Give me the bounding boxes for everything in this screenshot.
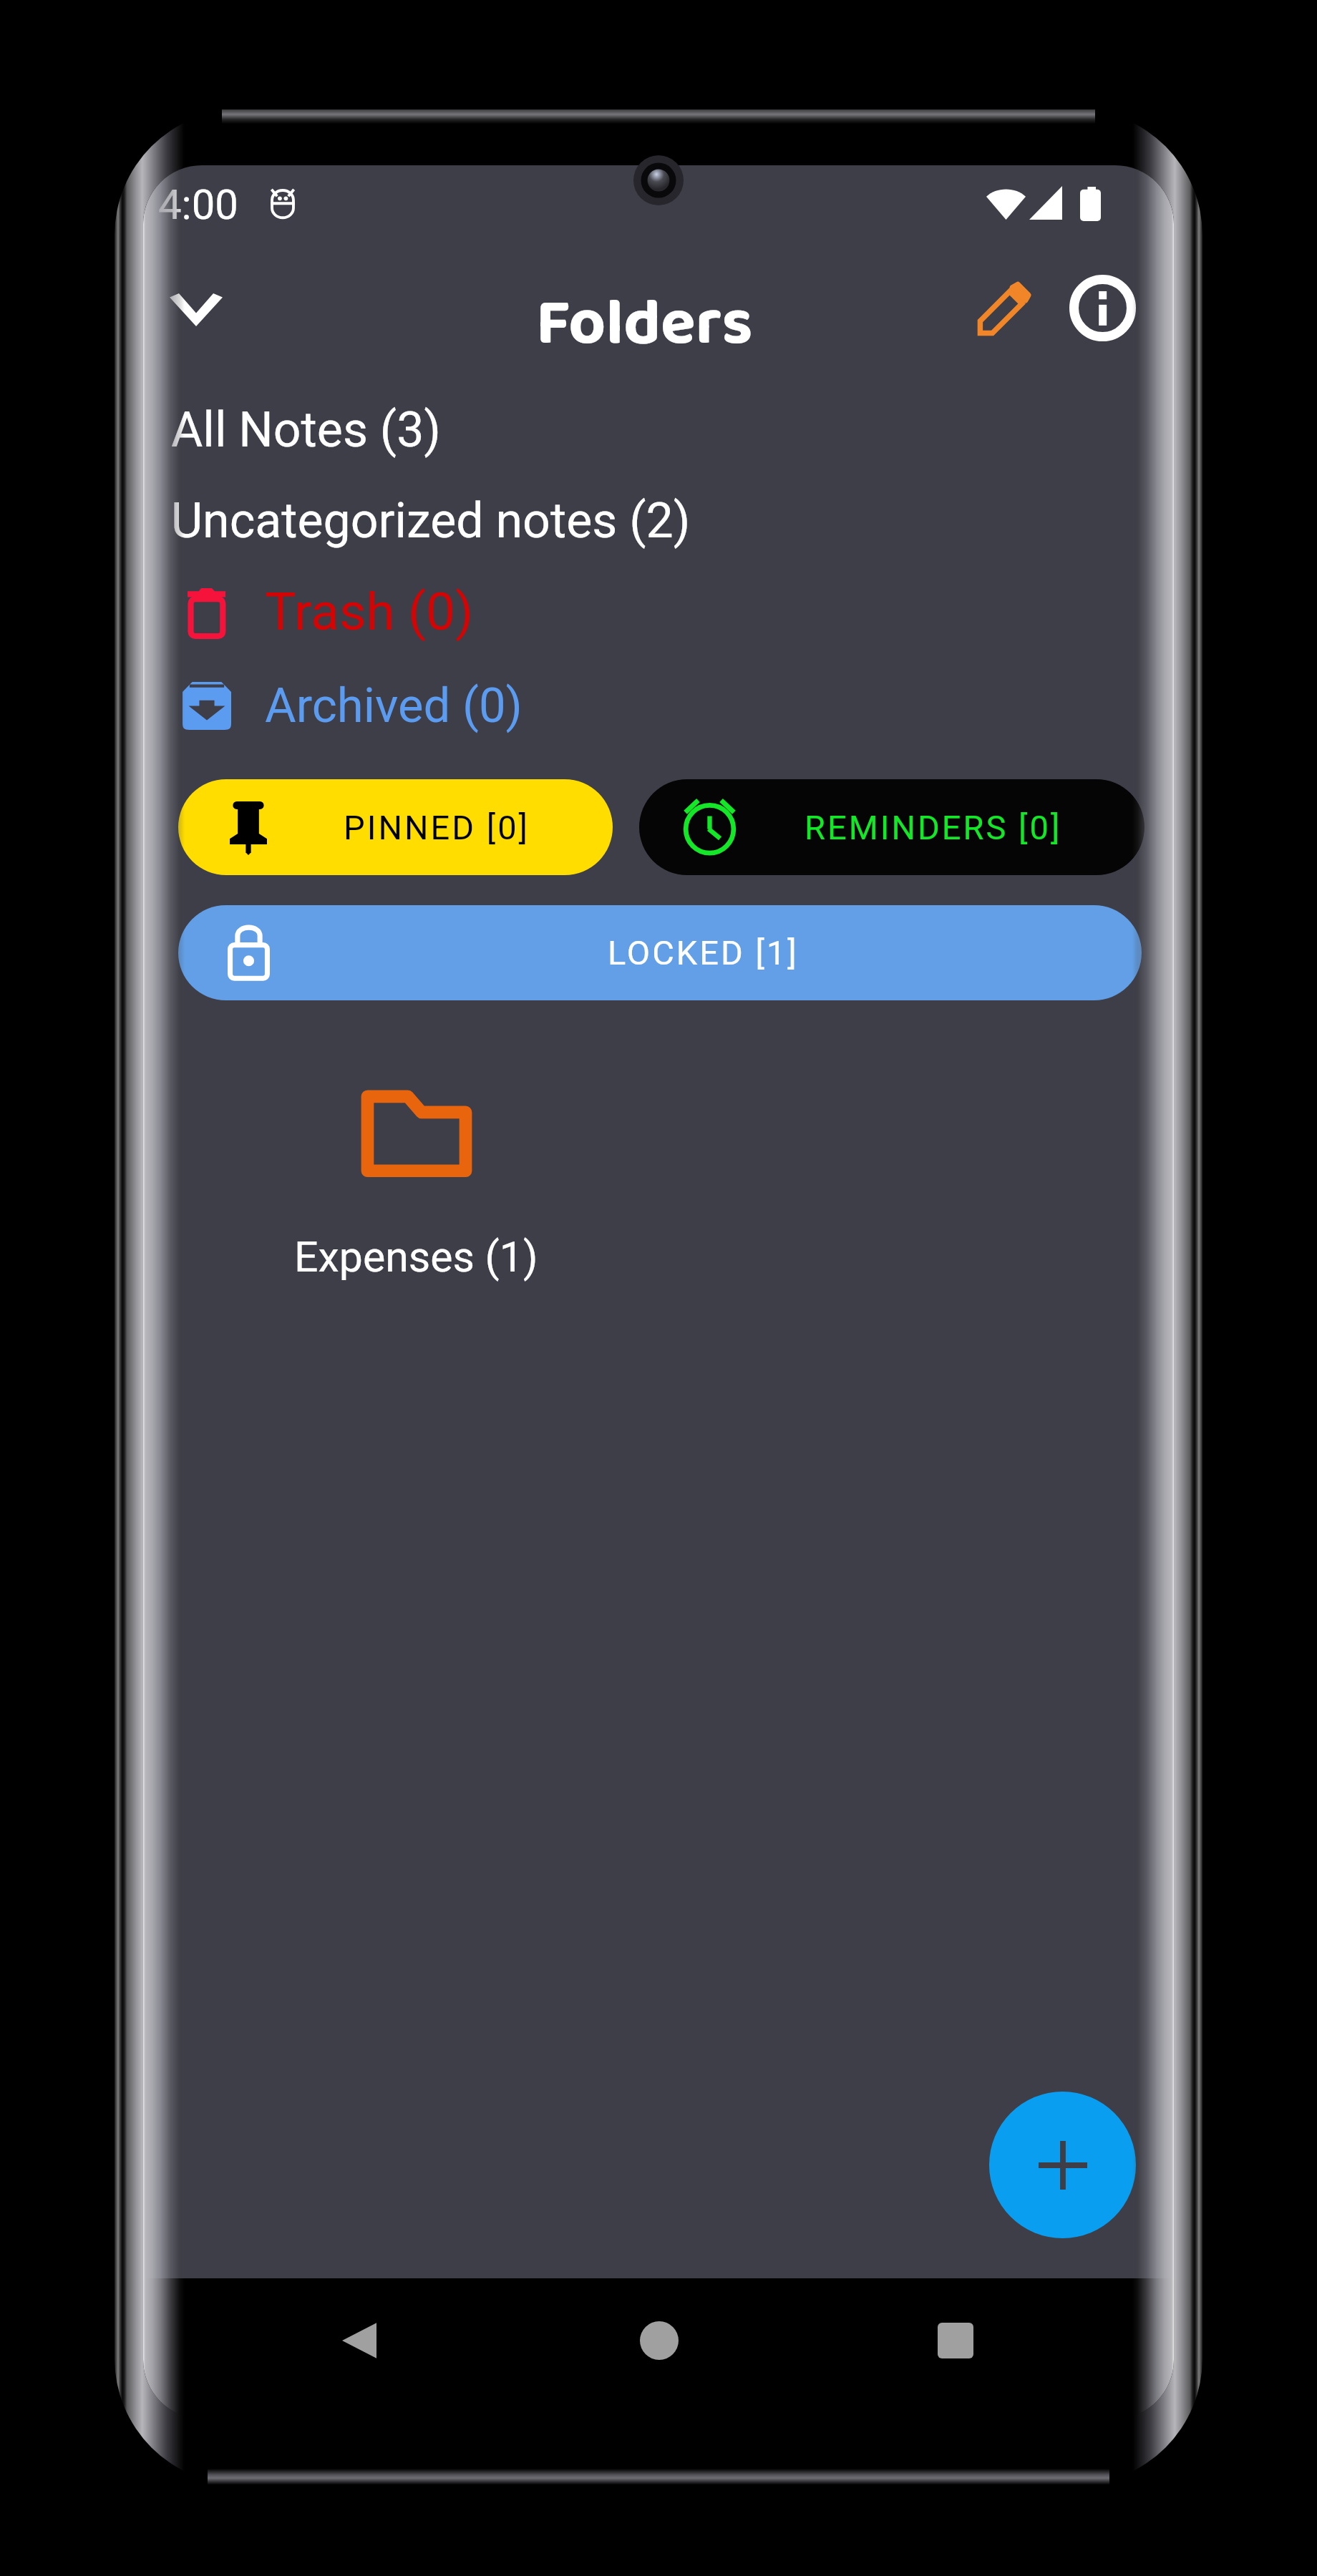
button[interactable]: Uncategorized notes (2): [143, 477, 1174, 565]
staticText: REMINDERS [0]: [805, 808, 1062, 847]
button[interactable]: Archived (0): [143, 661, 1174, 750]
button[interactable]: Info: [1058, 263, 1147, 352]
button[interactable]: All Notes (3): [143, 386, 1174, 474]
button[interactable]: LOCKED [1]: [178, 905, 1142, 1000]
staticText: Archived (0): [265, 678, 523, 734]
button[interactable]: Collapse: [152, 265, 240, 354]
button[interactable]: Trash (0): [143, 567, 1174, 656]
staticText: LOCKED [1]: [608, 933, 799, 972]
button[interactable]: Home: [617, 2298, 701, 2383]
button[interactable]: PINNED [0]: [178, 779, 613, 875]
staticText: Trash (0): [265, 581, 474, 643]
button[interactable]: Recents: [913, 2298, 998, 2383]
staticText: Expenses (1): [294, 1232, 538, 1282]
staticText: Folders: [536, 273, 753, 376]
button[interactable]: Expenses (1): [176, 1069, 656, 1305]
staticText: Uncategorized notes (2): [171, 492, 691, 550]
button[interactable]: Edit: [960, 264, 1049, 353]
button[interactable]: Back: [317, 2298, 402, 2383]
staticText: All Notes (3): [171, 401, 442, 459]
staticText: 4:00: [158, 180, 238, 229]
button[interactable]: REMINDERS [0]: [639, 779, 1145, 875]
button[interactable]: Add folder: [989, 2092, 1136, 2238]
staticText: PINNED [0]: [344, 808, 530, 847]
